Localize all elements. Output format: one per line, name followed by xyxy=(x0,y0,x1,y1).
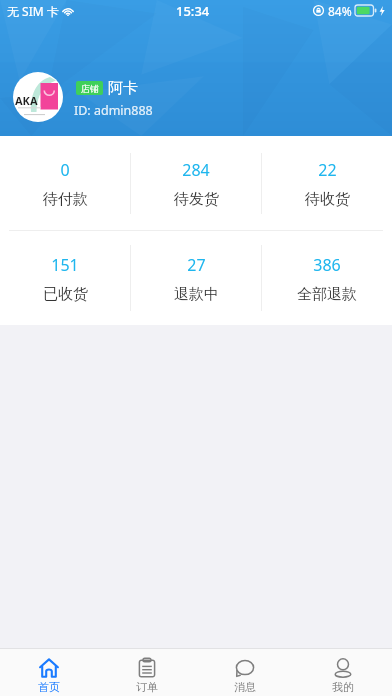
button[interactable]: 订单 xyxy=(98,649,196,696)
staticText: 阿卡 xyxy=(108,79,138,98)
staticText: 订单 xyxy=(136,680,158,694)
staticText: 15:34 xyxy=(176,2,210,20)
staticText: AKA xyxy=(15,93,38,108)
button[interactable]: 22 xyxy=(262,136,392,230)
staticText: 无 SIM 卡 xyxy=(7,3,59,19)
other: Profile avatar xyxy=(13,72,63,122)
staticText: 27 xyxy=(187,254,206,276)
staticText: 退款中 xyxy=(174,285,219,304)
staticText: 0 xyxy=(60,159,70,181)
staticText: 22 xyxy=(318,159,337,181)
button[interactable]: 首页 xyxy=(0,649,98,696)
button[interactable]: 27 xyxy=(131,231,261,325)
button[interactable]: Profile avatar xyxy=(13,72,392,122)
staticText: 386 xyxy=(313,254,341,276)
staticText: 待收货 xyxy=(305,190,350,209)
button[interactable]: 151 xyxy=(0,231,130,325)
staticText: 店铺 xyxy=(81,83,99,94)
staticText: 待付款 xyxy=(43,190,88,209)
staticText: ID: admin888 xyxy=(74,102,153,119)
button[interactable]: 386 xyxy=(262,231,392,325)
button[interactable]: 消息 xyxy=(196,649,294,696)
staticText: 待发货 xyxy=(174,190,219,209)
button[interactable]: 我的 xyxy=(294,649,392,696)
staticText: 消息 xyxy=(234,680,256,694)
button[interactable]: 284 xyxy=(131,136,261,230)
staticText: 已收货 xyxy=(43,285,88,304)
staticText: 全部退款 xyxy=(297,285,357,304)
staticText: 284 xyxy=(182,159,210,181)
staticText: 84% xyxy=(328,3,352,19)
staticText: 我的 xyxy=(332,680,354,694)
button[interactable]: 0 xyxy=(0,136,130,230)
staticText: 首页 xyxy=(38,680,60,694)
staticText: 151 xyxy=(51,254,79,276)
